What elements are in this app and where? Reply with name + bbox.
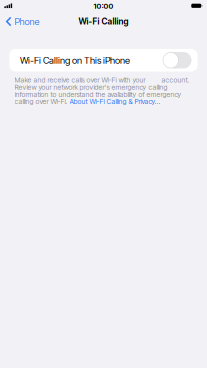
staticText: Make and receive calls over Wi-Fi with y… <box>14 76 189 84</box>
staticText: Wi-Fi Calling <box>78 16 128 27</box>
button[interactable]: calling over Wi-Fi. <box>14 98 160 105</box>
staticText: About Wi-Fi Calling & Privacy... <box>69 97 160 106</box>
staticText: Wi-Fi Calling on This iPhone <box>20 55 130 66</box>
button[interactable]: Wi-Fi Calling on This iPhone <box>9 49 197 71</box>
staticText: calling over Wi-Fi. <box>14 97 69 106</box>
staticText: Review your network provider's emergency… <box>14 83 167 91</box>
staticText: Phone <box>14 16 39 27</box>
staticText: 10:00 <box>93 1 113 10</box>
button[interactable]: Phone <box>0 13 45 30</box>
staticText: information to understand the availabili… <box>14 90 181 99</box>
